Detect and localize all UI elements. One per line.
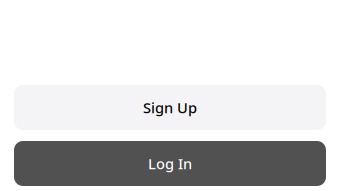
button[interactable]: Sign Up: [14, 85, 326, 130]
staticText: Sign Up: [143, 98, 197, 117]
button[interactable]: Log In: [14, 141, 326, 186]
staticText: Log In: [148, 154, 192, 173]
